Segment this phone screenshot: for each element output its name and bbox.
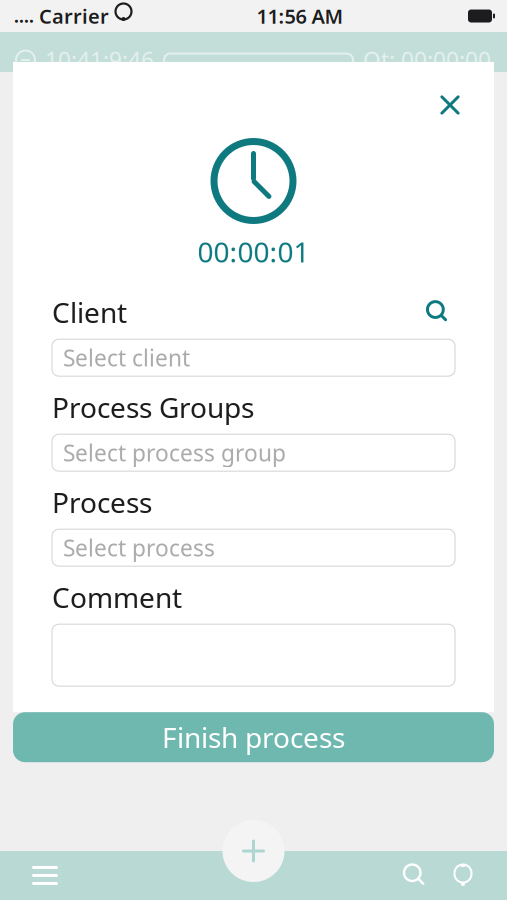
button[interactable]: Menu xyxy=(17,851,73,899)
button[interactable]: Add xyxy=(222,820,284,882)
staticText: Select process xyxy=(63,533,215,563)
button[interactable]: Select client xyxy=(52,339,455,376)
button[interactable]: Close xyxy=(430,85,470,125)
button[interactable]: Select process group xyxy=(52,434,455,471)
staticText: Ot: 00:00:00 xyxy=(363,45,491,75)
button[interactable]: Search client xyxy=(421,297,455,327)
staticText: Process Groups xyxy=(52,389,254,426)
staticText: Process xyxy=(52,484,152,521)
button[interactable] xyxy=(52,624,455,686)
staticText: Select process group xyxy=(63,438,286,468)
staticText: Carrier xyxy=(34,3,109,29)
staticText: 00:00:01 xyxy=(197,233,309,270)
button[interactable]: Search xyxy=(391,851,439,899)
button[interactable]: Select process xyxy=(52,529,455,566)
staticText: Comment xyxy=(52,579,182,616)
staticText: Client xyxy=(52,294,127,331)
staticText: Select client xyxy=(63,343,190,373)
staticText: .... xyxy=(14,4,34,27)
staticText: 11:56 AM xyxy=(256,3,343,29)
staticText: Finish process xyxy=(162,719,345,756)
button[interactable]: Notifications xyxy=(439,851,487,899)
staticText: 10:41:9:46 xyxy=(45,45,154,75)
button[interactable]: Finish process xyxy=(13,712,494,762)
